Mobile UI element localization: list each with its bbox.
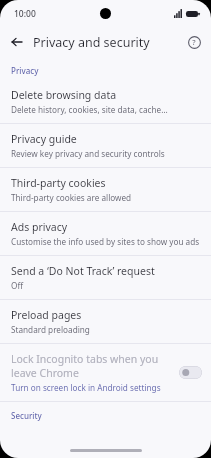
button[interactable]: Privacy guide — [0, 124, 211, 167]
staticText: ? — [192, 37, 196, 47]
staticText: Customise the info used by sites to show… — [11, 236, 200, 247]
button[interactable]: Lock Incognito tabs when you leave Chrom… — [0, 344, 211, 401]
staticText: Delete browsing data — [11, 88, 117, 102]
staticText: Privacy — [11, 65, 39, 76]
staticText: Security — [11, 410, 42, 421]
staticText: Turn on screen lock in Android settings — [11, 382, 161, 393]
staticText: Ads privacy — [11, 220, 68, 234]
staticText: Lock Incognito tabs when you leave Chrom… — [11, 352, 173, 380]
staticText: Review key privacy and security controls — [11, 148, 165, 159]
staticText: 10:00 — [14, 8, 36, 20]
staticText: Third-party cookies are allowed — [11, 192, 132, 203]
staticText: Privacy and security — [33, 34, 150, 51]
button[interactable]: Help — [183, 31, 205, 53]
staticText: Privacy guide — [11, 132, 77, 146]
button[interactable]: Third-party cookies — [0, 168, 211, 211]
staticText: Delete history, cookies, site data, cach… — [11, 104, 168, 115]
button[interactable]: Lock Incognito tabs toggle — [179, 366, 202, 379]
staticText: Send a ‘Do Not Track’ request — [11, 264, 155, 278]
staticText: Preload pages — [11, 308, 82, 322]
button[interactable]: Delete browsing data — [0, 80, 211, 123]
button[interactable]: Preload pages — [0, 300, 211, 343]
button[interactable]: Ads privacy — [0, 212, 211, 255]
button[interactable]: Back — [6, 31, 28, 53]
staticText: Third-party cookies — [11, 176, 106, 190]
staticText: Off — [11, 280, 24, 291]
staticText: Standard preloading — [11, 324, 90, 335]
button[interactable]: Send a ‘Do Not Track’ request — [0, 256, 211, 299]
